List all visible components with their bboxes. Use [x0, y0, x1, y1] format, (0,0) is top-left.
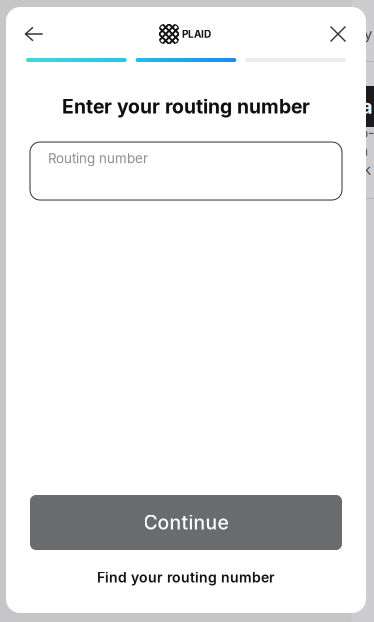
staticText: y	[364, 25, 372, 43]
button[interactable]: Continue	[30, 495, 342, 550]
staticText: Continue	[143, 511, 228, 534]
staticText: Enter your routing number	[62, 95, 310, 118]
staticText: on	[359, 124, 373, 159]
button[interactable]: Find your routing number	[97, 569, 275, 586]
staticText: a	[361, 94, 373, 119]
staticText: Find your routing number	[97, 569, 275, 586]
staticText: PLAID	[182, 28, 211, 40]
button[interactable]: Close	[321, 14, 355, 54]
staticText: Routing number	[48, 150, 148, 166]
staticText: k	[363, 161, 371, 178]
button[interactable]: Back	[15, 14, 53, 54]
